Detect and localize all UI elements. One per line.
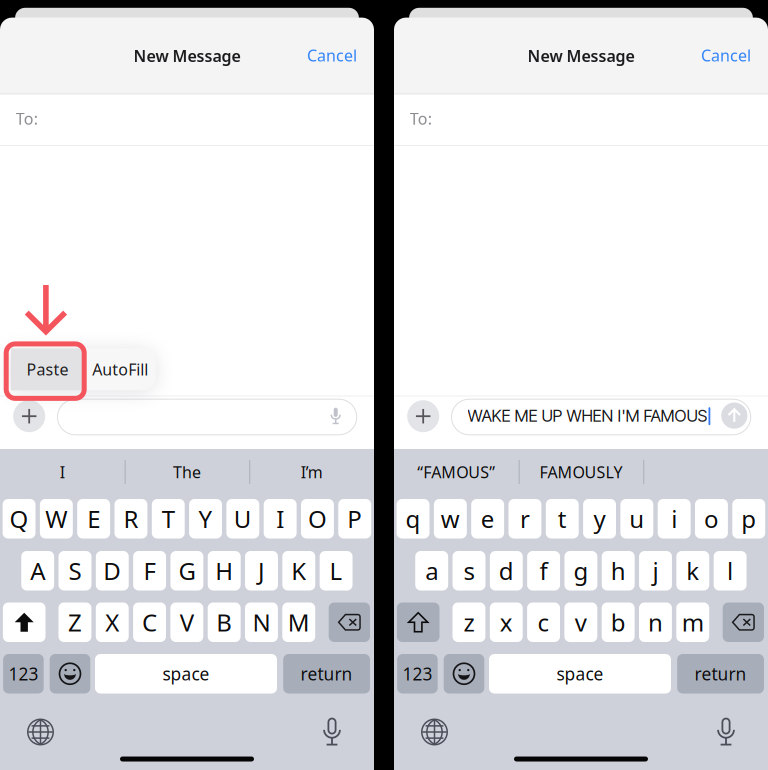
button[interactable]: “FAMOUS” — [394, 452, 519, 492]
button[interactable]: y — [583, 499, 616, 538]
button[interactable]: W — [40, 499, 73, 538]
button[interactable]: c — [527, 602, 560, 642]
button[interactable]: l — [714, 551, 746, 590]
button[interactable]: Next keyboard — [407, 713, 462, 751]
staticText: n — [648, 606, 663, 638]
button[interactable]: Cancel — [686, 35, 766, 75]
button[interactable]: U — [226, 499, 259, 538]
staticText: H — [215, 555, 233, 587]
button[interactable]: d — [490, 551, 523, 590]
button[interactable]: i — [658, 499, 691, 538]
staticText: T — [162, 503, 175, 535]
button[interactable]: I — [264, 499, 297, 538]
button[interactable]: Record audio — [331, 408, 341, 424]
staticText: Cancel — [307, 45, 357, 66]
button[interactable]: Shift — [397, 602, 439, 642]
button[interactable]: AutoFill — [85, 348, 156, 390]
button[interactable]: Z — [58, 602, 91, 642]
button[interactable]: return — [283, 654, 370, 693]
button[interactable]: a — [415, 551, 448, 590]
button[interactable]: Add attachment — [407, 400, 439, 432]
button[interactable]: Shift — [3, 602, 45, 642]
button[interactable]: x — [490, 602, 523, 642]
staticText: Z — [68, 606, 82, 638]
button[interactable]: I — [0, 452, 125, 492]
button[interactable]: t — [546, 499, 579, 538]
button[interactable]: k — [676, 551, 709, 590]
button[interactable]: Dictate — [699, 713, 753, 751]
button[interactable]: H — [208, 551, 241, 590]
staticText: h — [611, 555, 626, 587]
button[interactable]: Emoji — [444, 654, 484, 693]
staticText: To: — [410, 108, 432, 129]
staticText: C — [142, 606, 157, 638]
button[interactable]: return — [677, 654, 764, 693]
button[interactable]: S — [58, 551, 91, 590]
button[interactable]: X — [96, 602, 129, 642]
button[interactable]: P — [338, 499, 371, 538]
button[interactable]: v — [564, 602, 597, 642]
button[interactable]: 123 — [3, 654, 44, 693]
button[interactable]: Delete — [329, 602, 370, 642]
button[interactable]: V — [170, 602, 203, 642]
staticText: space — [556, 662, 603, 685]
button[interactable]: space — [489, 654, 671, 693]
button[interactable]: G — [170, 551, 203, 590]
staticText: e — [481, 503, 495, 535]
button[interactable]: Send — [721, 402, 747, 429]
button[interactable]: F — [133, 551, 166, 590]
button[interactable]: I’m — [249, 452, 374, 492]
button[interactable]: E — [77, 499, 110, 538]
staticText: o — [704, 503, 719, 535]
button[interactable]: Add attachment — [13, 400, 45, 432]
staticText: r — [520, 503, 530, 535]
button[interactable]: r — [508, 499, 541, 538]
button[interactable]: p — [732, 499, 765, 538]
button[interactable]: M — [282, 602, 315, 642]
button[interactable]: q — [397, 499, 429, 538]
button[interactable]: T — [152, 499, 185, 538]
button[interactable]: 123 — [397, 654, 438, 693]
button[interactable]: w — [434, 499, 467, 538]
button[interactable]: B — [208, 602, 241, 642]
button[interactable]: C — [133, 602, 166, 642]
button[interactable]: O — [301, 499, 334, 538]
button[interactable]: A — [21, 551, 54, 590]
button[interactable]: K — [282, 551, 315, 590]
staticText: p — [741, 503, 756, 535]
staticText: L — [330, 555, 343, 587]
staticText: New Message — [133, 45, 240, 66]
button[interactable]: Y — [189, 499, 222, 538]
button[interactable]: space — [95, 654, 277, 693]
button[interactable]: Emoji — [50, 654, 90, 693]
button[interactable]: D — [96, 551, 129, 590]
button[interactable]: R — [114, 499, 147, 538]
button[interactable]: e — [471, 499, 504, 538]
button[interactable]: m — [676, 602, 709, 642]
button[interactable]: J — [245, 551, 278, 590]
button[interactable]: Delete — [723, 602, 764, 642]
button[interactable]: n — [639, 602, 672, 642]
staticText: W — [45, 503, 67, 535]
button[interactable]: z — [452, 602, 485, 642]
button[interactable]: h — [602, 551, 635, 590]
button[interactable]: j — [639, 551, 672, 590]
button[interactable]: Next keyboard — [13, 713, 68, 751]
button[interactable]: s — [453, 551, 485, 590]
button[interactable]: The — [125, 452, 249, 492]
button[interactable]: u — [620, 499, 653, 538]
button[interactable]: b — [602, 602, 635, 642]
button[interactable]: FAMOUSLY — [519, 452, 643, 492]
button[interactable]: o — [695, 499, 728, 538]
button[interactable]: Paste — [11, 348, 84, 390]
button[interactable]: g — [564, 551, 597, 590]
button[interactable]: Q — [3, 499, 35, 538]
button[interactable]: Dictate — [305, 713, 359, 751]
staticText: Cancel — [701, 45, 751, 66]
button[interactable]: L — [320, 551, 352, 590]
staticText: c — [538, 606, 550, 638]
button[interactable]: N — [245, 602, 278, 642]
button[interactable]: f — [527, 551, 560, 590]
button[interactable]: Cancel — [292, 35, 372, 75]
